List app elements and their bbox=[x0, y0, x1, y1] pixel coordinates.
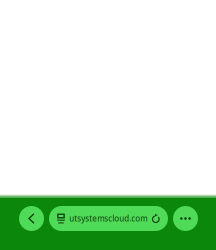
button[interactable]: utsystemscloud.com bbox=[49, 206, 168, 231]
staticText: utsystemscloud.com bbox=[69, 213, 147, 224]
button[interactable]: More bbox=[173, 206, 198, 231]
button[interactable]: Back bbox=[19, 206, 44, 231]
